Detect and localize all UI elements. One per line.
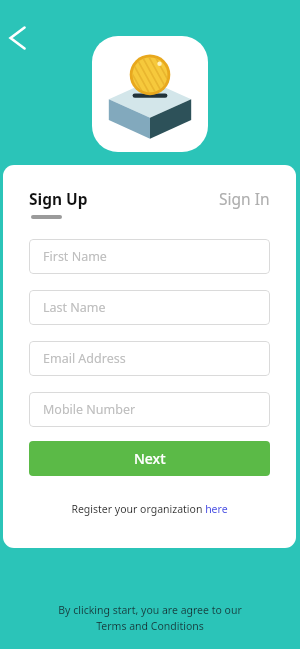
staticText: Last Name [43, 299, 106, 316]
staticText: Sign Up [29, 188, 88, 209]
button[interactable]: Sign In [219, 188, 270, 209]
button[interactable]: First Name [29, 239, 270, 274]
staticText: Register your organization here [71, 502, 228, 516]
staticText: Email Address [43, 350, 126, 367]
staticText: Mobile Number [43, 401, 136, 418]
button[interactable]: Last Name [29, 290, 270, 325]
button[interactable]: Mobile Number [29, 392, 270, 427]
button[interactable]: Sign Up [29, 188, 88, 219]
other: Donation box app icon [92, 36, 208, 152]
staticText: First Name [43, 248, 107, 265]
button[interactable]: Register your organization here [29, 502, 270, 516]
staticText: Sign In [219, 188, 270, 209]
button[interactable]: Next [29, 441, 270, 476]
button[interactable]: Back [1, 19, 39, 57]
staticText: Next [134, 449, 166, 468]
staticText: By clicking start, you are agree to our [58, 603, 242, 617]
button[interactable]: By clicking start, you are agree to our [0, 603, 300, 633]
staticText: Terms and Conditions [96, 619, 204, 633]
button[interactable]: Email Address [29, 341, 270, 376]
